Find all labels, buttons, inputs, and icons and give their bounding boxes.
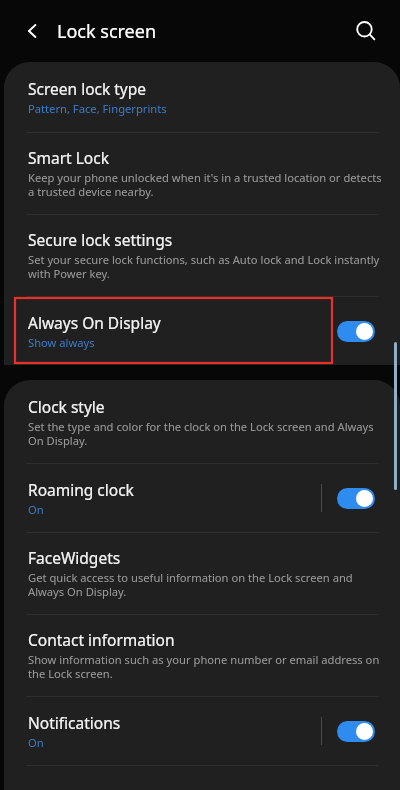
staticText: Smart Lock — [28, 147, 109, 168]
staticText: Clock style — [28, 396, 105, 417]
staticText: On — [28, 735, 44, 750]
button[interactable]: Roaming clock — [4, 464, 400, 532]
button[interactable]: Screen lock type — [4, 62, 400, 132]
button[interactable]: Search — [346, 11, 386, 51]
staticText: Lock screen — [57, 19, 157, 44]
button[interactable]: Back — [14, 12, 52, 50]
button[interactable]: Toggle Always On Display — [337, 321, 375, 342]
staticText: On — [28, 502, 44, 517]
staticText: Show information such as your phone numb… — [28, 652, 388, 682]
button[interactable]: FaceWidgets — [4, 533, 400, 614]
staticText: Set the type and color for the clock on … — [28, 419, 388, 449]
button[interactable]: Smart Lock — [4, 133, 400, 214]
staticText: Keep your phone unlocked when it's in a … — [28, 170, 388, 200]
staticText: Get quick access to useful information o… — [28, 570, 388, 600]
button[interactable]: Secure lock settings — [4, 215, 400, 296]
staticText: Notifications — [28, 712, 121, 733]
staticText: Contact information — [28, 629, 175, 650]
staticText: Screen lock type — [28, 78, 147, 99]
button[interactable]: Clock style — [4, 380, 400, 463]
staticText: Roaming clock — [28, 479, 134, 500]
button[interactable]: Toggle Notifications — [337, 721, 375, 742]
staticText: Always On Display — [28, 312, 161, 333]
button[interactable]: Notifications — [4, 697, 400, 765]
button[interactable]: Toggle Roaming clock — [337, 488, 375, 509]
staticText: Show always — [28, 335, 95, 350]
button[interactable]: Always On Display — [4, 297, 400, 365]
staticText: Set your secure lock functions, such as … — [28, 252, 388, 282]
staticText: FaceWidgets — [28, 547, 121, 568]
button[interactable]: Contact information — [4, 615, 400, 696]
staticText: Pattern, Face, Fingerprints — [28, 101, 167, 116]
staticText: Secure lock settings — [28, 229, 173, 250]
